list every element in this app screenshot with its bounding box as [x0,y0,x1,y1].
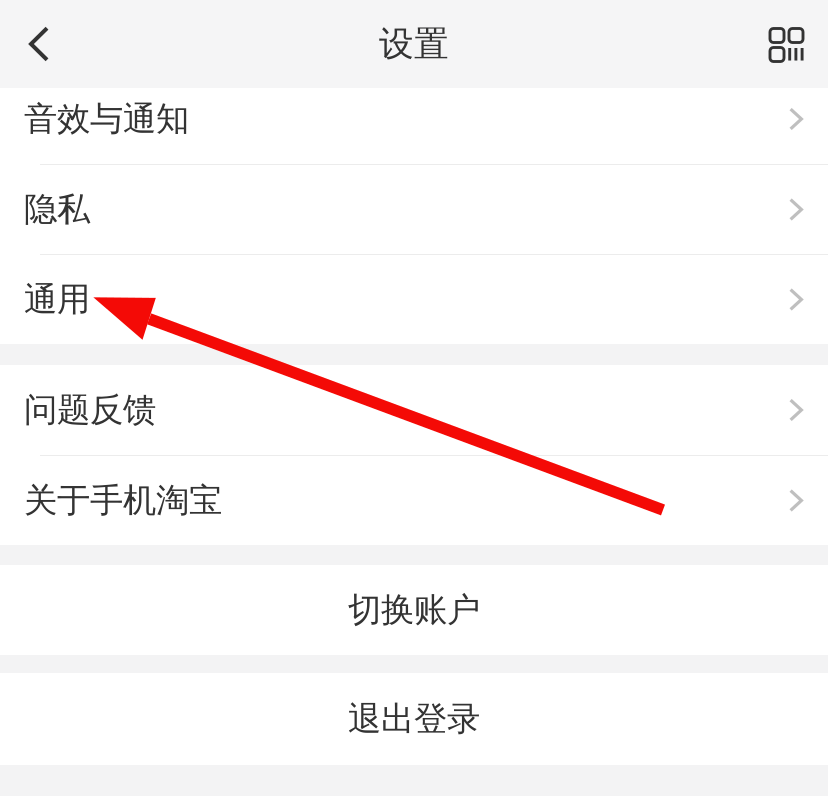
staticText: 切换账户 [348,589,480,630]
staticText: 退出登录 [348,698,480,739]
staticText: 问题反馈 [24,389,156,430]
button[interactable]: 关于手机淘宝 [0,456,828,545]
staticText: 设置 [379,23,449,65]
button[interactable]: 通用 [0,255,828,344]
staticText: 关于手机淘宝 [24,480,222,521]
button[interactable]: 切换账户 [0,565,828,655]
button[interactable]: Back [0,0,78,88]
staticText: 通用 [24,279,90,320]
staticText: 隐私 [24,189,90,230]
button[interactable]: 隐私 [0,165,828,254]
button[interactable]: 退出登录 [0,673,828,765]
button[interactable]: Scan QR code [750,0,828,88]
button[interactable]: 问题反馈 [0,365,828,455]
button[interactable]: 音效与通知 [0,88,828,164]
staticText: 音效与通知 [24,98,189,139]
